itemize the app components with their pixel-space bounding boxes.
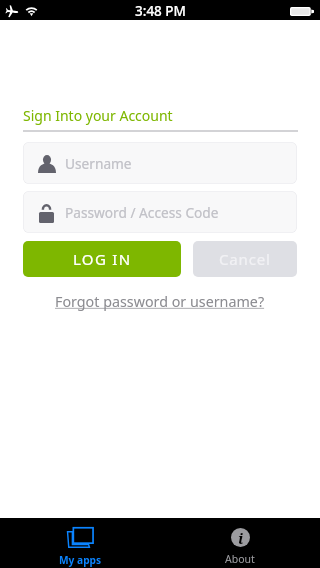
staticText: LOG IN [73,249,132,269]
staticText: Sign Into your Account [23,106,173,125]
button[interactable]: Cancel [193,241,297,277]
button[interactable]: Username [23,142,297,184]
staticText: Password / Access Code [65,203,219,222]
staticText: 3:48 PM [135,2,186,20]
staticText: Username [65,154,132,173]
button[interactable]: My apps [0,518,160,568]
staticText: About [225,552,255,566]
staticText: Cancel [219,249,271,269]
button[interactable]: Forgot password or username? [55,292,265,311]
button[interactable]: LOG IN [23,241,181,277]
staticText: My apps [59,553,102,567]
button[interactable]: About [160,518,320,568]
staticText: i [238,528,244,547]
button[interactable]: Password / Access Code [23,191,297,233]
